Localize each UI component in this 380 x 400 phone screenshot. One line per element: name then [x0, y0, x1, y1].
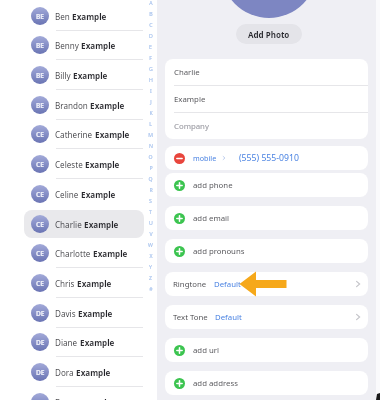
staticText: BE	[36, 41, 45, 50]
staticText: L	[149, 120, 152, 127]
button[interactable]: BE	[31, 90, 157, 120]
button[interactable]: Ringtone	[165, 272, 368, 296]
button[interactable]	[24, 328, 144, 356]
staticText: add pronouns	[193, 246, 245, 257]
staticText: BE	[36, 71, 45, 80]
staticText: B	[149, 10, 153, 17]
staticText: G	[149, 65, 153, 72]
staticText: T	[149, 208, 152, 215]
button[interactable]: CE	[31, 209, 157, 239]
staticText: BE	[36, 101, 45, 110]
button[interactable]: BE	[31, 1, 157, 31]
staticText: Brandon	[55, 100, 88, 111]
staticText: Charlie	[174, 67, 200, 78]
button[interactable]: CE	[31, 238, 157, 268]
staticText: add email	[193, 213, 230, 224]
staticText: Celine	[55, 189, 79, 200]
button[interactable]: DE	[31, 387, 157, 400]
staticText: M	[148, 131, 153, 138]
button[interactable]: CE	[31, 149, 157, 179]
staticText: Catherine	[55, 129, 93, 140]
staticText: Example	[71, 70, 108, 81]
staticText: E	[149, 43, 152, 50]
staticText: Default	[214, 279, 241, 290]
staticText: J	[150, 98, 152, 105]
button[interactable]	[24, 358, 144, 386]
staticText: Dove	[55, 397, 75, 400]
other: Pointer	[0, 0, 380, 400]
button[interactable]	[24, 31, 144, 59]
staticText: (555) 555-0910	[239, 152, 299, 164]
button[interactable]: mobile	[165, 146, 368, 170]
button[interactable]	[24, 150, 144, 178]
button[interactable]	[24, 91, 144, 119]
staticText: Example	[91, 248, 128, 259]
staticText: X	[149, 252, 153, 259]
button[interactable]: CE	[31, 119, 157, 149]
staticText: DE	[36, 309, 45, 318]
staticText: CE	[36, 249, 44, 258]
staticText: Diane	[55, 337, 78, 348]
staticText: I	[150, 87, 152, 94]
staticText: Billy	[55, 70, 71, 81]
staticText: add phone	[193, 180, 233, 191]
staticText: S	[149, 197, 152, 204]
staticText: Example	[82, 219, 119, 230]
button[interactable]: DE	[31, 357, 157, 387]
button[interactable]: add url	[165, 338, 368, 362]
button[interactable]: Text Tone	[165, 305, 368, 329]
button[interactable]: add pronouns	[165, 239, 368, 263]
staticText: Example	[79, 40, 116, 51]
button[interactable]: DE	[31, 298, 157, 328]
staticText: Example	[78, 337, 115, 348]
button[interactable]: DE	[31, 327, 157, 357]
button[interactable]	[24, 269, 144, 297]
staticText: Text Tone	[173, 312, 208, 323]
button[interactable]	[24, 210, 144, 238]
button[interactable]: Charlie	[165, 59, 368, 85]
button[interactable]: Add Photo	[236, 24, 302, 44]
button[interactable]	[24, 388, 144, 400]
button[interactable]: CE	[31, 179, 157, 209]
button[interactable]: BE	[31, 30, 157, 60]
button[interactable]	[24, 2, 144, 30]
staticText: Y	[149, 263, 152, 270]
staticText: CE	[36, 279, 44, 288]
staticText: Add Photo	[248, 29, 290, 40]
staticText: CE	[36, 190, 44, 199]
button[interactable]: CE	[31, 268, 157, 298]
staticText: D	[149, 32, 153, 39]
button[interactable]	[24, 61, 144, 89]
button[interactable]	[24, 120, 144, 148]
button[interactable]: add email	[165, 206, 368, 230]
staticText: Q	[148, 175, 153, 182]
button[interactable]: BE	[31, 60, 157, 90]
button[interactable]: add phone	[165, 173, 368, 197]
staticText: Davis	[55, 308, 76, 319]
staticText: Chris	[55, 278, 75, 289]
staticText: Example	[70, 11, 107, 22]
staticText: Example	[75, 278, 112, 289]
staticText: Example	[93, 129, 130, 140]
staticText: Charlie	[55, 219, 82, 230]
button[interactable]: add address	[165, 371, 368, 395]
staticText: U	[149, 219, 153, 226]
staticText: BE	[36, 12, 45, 21]
button[interactable]: Example	[165, 86, 368, 112]
staticText: CE	[36, 220, 44, 229]
staticText: Charlotte	[55, 248, 91, 259]
staticText: Example	[174, 94, 206, 105]
staticText: Company	[174, 121, 209, 132]
staticText: R	[149, 186, 153, 193]
button[interactable]: Contact photo	[221, 0, 317, 18]
button[interactable]	[24, 299, 144, 327]
staticText: Z	[149, 274, 152, 281]
button[interactable]	[24, 239, 144, 267]
staticText: add address	[193, 378, 238, 389]
staticText: P	[149, 164, 153, 171]
staticText: Example	[75, 397, 112, 400]
button[interactable]: Company	[165, 113, 368, 139]
button[interactable]	[24, 180, 144, 208]
staticText: Benny	[55, 40, 79, 51]
